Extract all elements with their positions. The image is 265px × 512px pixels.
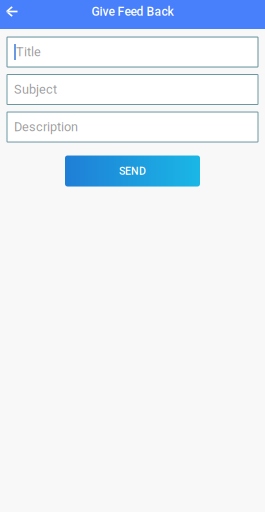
button[interactable]: SEND <box>65 155 200 186</box>
staticText: Description <box>14 120 78 134</box>
staticText: Subject <box>14 82 57 97</box>
staticText: SEND <box>119 165 146 177</box>
button[interactable]: Description <box>7 112 258 142</box>
button[interactable]: Back <box>0 0 24 29</box>
button[interactable]: Subject <box>7 74 258 104</box>
button[interactable]: Title <box>7 37 258 67</box>
staticText: Title <box>16 45 41 59</box>
staticText: Give Feed Back <box>91 4 173 19</box>
